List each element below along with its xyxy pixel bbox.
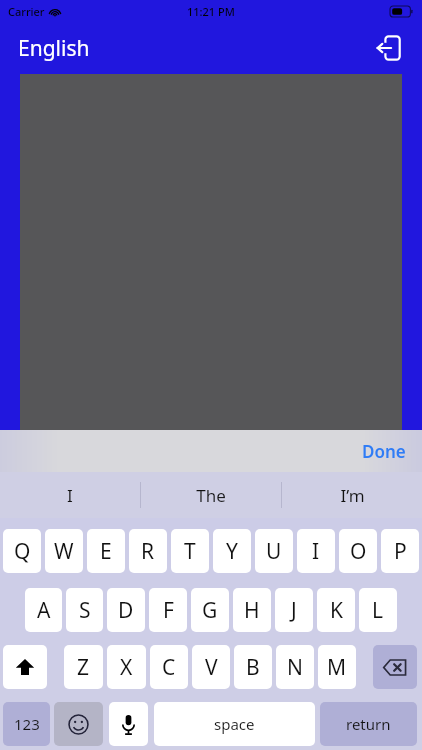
staticText: Done <box>362 440 406 463</box>
button[interactable]: J <box>275 588 313 632</box>
button[interactable]: 123 <box>3 702 50 746</box>
staticText: T <box>184 537 196 566</box>
button[interactable]: Z <box>64 645 103 689</box>
button[interactable]: P <box>381 529 419 573</box>
staticText: E <box>100 537 112 566</box>
staticText: L <box>372 596 384 625</box>
button[interactable]: I’m <box>282 472 422 518</box>
button[interactable]: L <box>359 588 397 632</box>
button[interactable]: G <box>191 588 229 632</box>
staticText: I <box>67 484 73 507</box>
button[interactable]: U <box>255 529 293 573</box>
button[interactable]: W <box>45 529 83 573</box>
button[interactable]: B <box>234 645 272 689</box>
button[interactable]: H <box>233 588 271 632</box>
button[interactable]: Q <box>3 529 41 573</box>
staticText: K <box>330 596 343 625</box>
staticText: B <box>246 653 260 682</box>
button[interactable]: Y <box>213 529 251 573</box>
button[interactable]: C <box>150 645 188 689</box>
button[interactable]: Backspace <box>373 645 417 689</box>
staticText: English <box>18 34 90 63</box>
staticText: W <box>54 537 74 566</box>
button[interactable]: K <box>317 588 355 632</box>
button[interactable]: Dictate <box>109 702 148 746</box>
staticText: 123 <box>14 714 40 734</box>
button[interactable]: Done <box>346 434 422 469</box>
staticText: space <box>214 714 255 734</box>
staticText: The <box>196 484 226 507</box>
staticText: O <box>350 537 367 566</box>
button[interactable]: V <box>192 645 230 689</box>
staticText: N <box>287 653 303 682</box>
staticText: G <box>202 596 218 625</box>
button[interactable]: T <box>171 529 209 573</box>
staticText: M <box>327 653 347 682</box>
button[interactable]: Emoji <box>54 702 103 746</box>
button[interactable]: D <box>107 588 145 632</box>
button[interactable]: return <box>320 702 417 746</box>
staticText: U <box>266 537 282 566</box>
button[interactable]: O <box>339 529 377 573</box>
staticText: V <box>205 653 218 682</box>
staticText: X <box>120 653 133 682</box>
button[interactable]: M <box>318 645 356 689</box>
button[interactable]: The <box>141 472 281 518</box>
staticText: 11:21 PM <box>187 4 235 19</box>
button[interactable]: F <box>149 588 187 632</box>
staticText: R <box>141 537 155 566</box>
staticText: Z <box>77 653 90 682</box>
button[interactable]: S <box>66 588 103 632</box>
button[interactable]: I <box>297 529 335 573</box>
button[interactable]: Shift <box>3 645 47 689</box>
staticText: J <box>291 596 297 625</box>
button[interactable]: A <box>25 588 62 632</box>
staticText: D <box>118 596 134 625</box>
staticText: A <box>37 596 51 625</box>
staticText: F <box>163 596 174 625</box>
staticText: Y <box>226 537 238 566</box>
staticText: I <box>312 537 320 566</box>
staticText: H <box>244 596 260 625</box>
button[interactable]: I <box>0 472 140 518</box>
staticText: S <box>79 596 91 625</box>
staticText: P <box>394 537 407 566</box>
button[interactable]: R <box>129 529 167 573</box>
staticText: C <box>162 653 176 682</box>
button[interactable]: N <box>276 645 314 689</box>
button[interactable]: E <box>87 529 125 573</box>
staticText: return <box>346 714 391 734</box>
staticText: Carrier <box>8 4 45 19</box>
staticText: Q <box>14 537 31 566</box>
button[interactable]: space <box>154 702 315 746</box>
button[interactable]: Log out <box>368 28 408 68</box>
staticText: I’m <box>340 484 365 507</box>
button[interactable]: X <box>107 645 146 689</box>
